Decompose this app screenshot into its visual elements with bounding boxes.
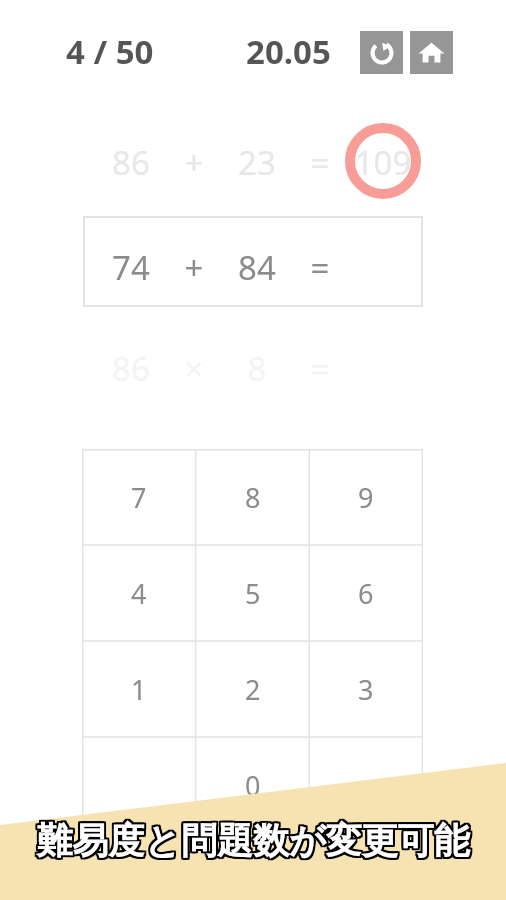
staticText: 難易度と問題数が変更可能	[13, 817, 495, 862]
staticText: 難易度と問題数が変更可能	[10, 817, 492, 862]
staticText: 86	[98, 346, 164, 391]
staticText: 難易度と問題数が変更可能	[10, 816, 492, 861]
staticText: 7	[131, 479, 147, 516]
staticText: 難易度と問題数が変更可能	[13, 816, 495, 861]
staticText: 3	[358, 671, 374, 708]
staticText: 難易度と問題数が変更可能	[12, 818, 494, 863]
staticText: 4	[131, 575, 147, 612]
staticText: 23	[224, 140, 290, 185]
button[interactable]: 9	[309, 449, 423, 545]
button[interactable]: 2	[196, 641, 310, 737]
staticText: 難易度と問題数が変更可能	[13, 820, 495, 865]
staticText: 難易度と問題数が変更可能	[11, 819, 493, 864]
button[interactable]: Restart	[360, 31, 403, 74]
staticText: 5	[245, 575, 261, 612]
staticText: 20.05	[246, 29, 331, 74]
staticText: 難易度と問題数が変更可能	[12, 817, 494, 862]
staticText: 難易度と問題数が変更可能	[14, 816, 496, 861]
button[interactable]: 3	[309, 641, 423, 737]
staticText: 84	[224, 245, 290, 290]
staticText: 難易度と問題数が変更可能	[10, 818, 492, 863]
staticText: 8	[245, 479, 261, 516]
staticText: =	[294, 140, 346, 185]
staticText: 0	[245, 767, 261, 804]
staticText: 109	[350, 140, 416, 185]
staticText: 難易度と問題数が変更可能	[14, 819, 496, 864]
button[interactable]: 7	[82, 449, 196, 545]
button[interactable]: 4	[82, 545, 196, 641]
staticText: 難易度と問題数が変更可能	[14, 817, 496, 862]
staticText: 難易度と問題数が変更可能	[12, 816, 494, 861]
staticText: 難易度と問題数が変更可能	[11, 816, 493, 861]
staticText: 難易度と問題数が変更可能	[11, 820, 493, 865]
staticText: 9	[358, 479, 374, 516]
staticText: 1	[131, 671, 147, 708]
button[interactable]: 6	[309, 545, 423, 641]
staticText: 74	[98, 245, 164, 290]
staticText: 難易度と問題数が変更可能	[12, 819, 494, 864]
staticText: 難易度と問題数が変更可能	[14, 820, 496, 865]
staticText: 難易度と問題数が変更可能	[10, 819, 492, 864]
staticText: 難易度と問題数が変更可能	[13, 818, 495, 863]
button[interactable]	[84, 217, 422, 306]
staticText: 難易度と問題数が変更可能	[13, 819, 495, 864]
button[interactable]: Home	[410, 31, 453, 74]
staticText: 難易度と問題数が変更可能	[14, 818, 496, 863]
staticText: +	[168, 140, 220, 185]
staticText: 難易度と問題数が変更可能	[10, 820, 492, 865]
button[interactable]: 0	[196, 737, 310, 833]
staticText: 難易度と問題数が変更可能	[11, 818, 493, 863]
staticText: =	[294, 245, 346, 290]
staticText: 2	[245, 671, 261, 708]
staticText: 難易度と問題数が変更可能	[12, 820, 494, 865]
staticText: 難易度と問題数が変更可能	[11, 817, 493, 862]
button[interactable]: 5	[196, 545, 310, 641]
button[interactable]: 8	[196, 449, 310, 545]
staticText: +	[168, 245, 220, 290]
staticText: 86	[98, 140, 164, 185]
button[interactable]: 1	[82, 641, 196, 737]
staticText: 4 / 50	[66, 29, 154, 74]
staticText: 6	[358, 575, 374, 612]
